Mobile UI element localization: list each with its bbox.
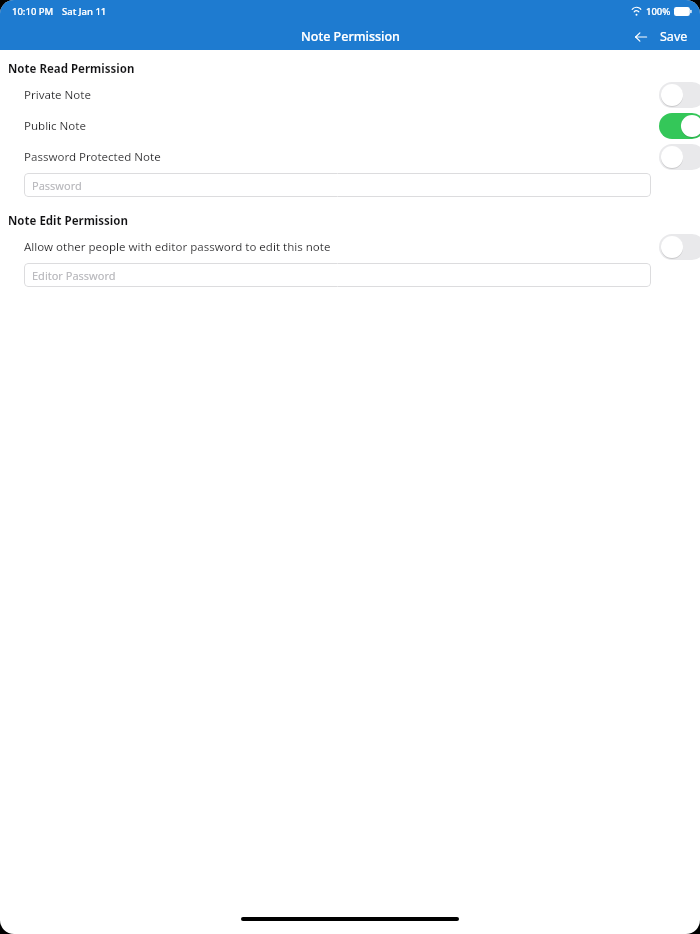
button[interactable]: Off <box>659 144 700 170</box>
button[interactable]: Allow other people with editor password … <box>0 234 700 260</box>
staticText: Note Edit Permission <box>8 213 128 229</box>
staticText: 10:10 PM <box>12 5 54 18</box>
button[interactable]: Password Protected Note <box>0 144 700 170</box>
button[interactable]: Public Note <box>0 113 700 139</box>
button[interactable]: On <box>659 113 700 139</box>
staticText: Public Note <box>24 118 86 134</box>
staticText: 100% <box>646 5 671 18</box>
button[interactable]: Off <box>659 82 700 108</box>
staticText: Sat Jan 11 <box>62 5 107 18</box>
button[interactable]: Private Note <box>0 82 700 108</box>
button[interactable]: Off <box>659 234 700 260</box>
button[interactable]: Password <box>24 173 651 197</box>
staticText: Save <box>660 28 688 45</box>
staticText: Editor Password <box>32 268 116 283</box>
staticText: Password <box>32 178 82 193</box>
staticText: Note Permission <box>301 28 400 45</box>
staticText: Password Protected Note <box>24 149 161 165</box>
button[interactable]: Editor Password <box>24 263 651 287</box>
staticText: Allow other people with editor password … <box>24 239 331 255</box>
staticText: Private Note <box>24 87 91 103</box>
staticText: Note Read Permission <box>8 61 135 77</box>
button[interactable]: Back <box>630 26 652 48</box>
button[interactable]: Save <box>658 25 690 48</box>
